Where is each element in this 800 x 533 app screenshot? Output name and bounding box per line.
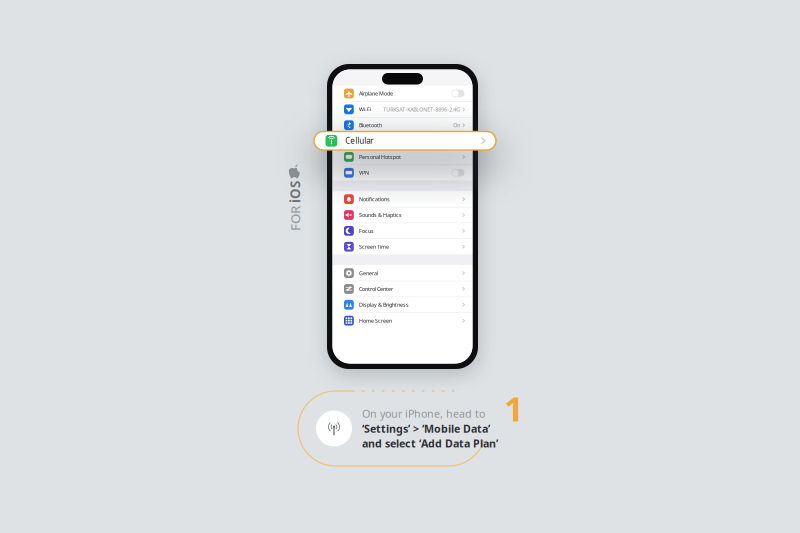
staticText: On — [453, 122, 460, 129]
button[interactable]: Cellular — [314, 131, 496, 150]
button[interactable]: Wi-Fi — [332, 102, 472, 117]
staticText: Home Screen — [359, 317, 392, 324]
staticText: Notifications — [359, 196, 390, 203]
staticText: General — [359, 270, 378, 277]
staticText: Bluetooth — [359, 122, 382, 129]
staticText: VPN — [359, 169, 369, 176]
button[interactable]: Notifications — [332, 191, 472, 207]
staticText: Screen Time — [359, 243, 389, 250]
button[interactable]: General — [332, 265, 472, 281]
button[interactable]: Sounds & Haptics — [332, 207, 472, 223]
button[interactable]: Personal Hotspot — [332, 149, 472, 165]
staticText: Sounds & Haptics — [359, 211, 402, 219]
staticText: Cellular — [345, 135, 373, 146]
button[interactable]: Bluetooth — [332, 117, 472, 133]
staticText: and select ‘Add Data Plan’ — [362, 436, 498, 451]
staticText: Airplane Mode — [359, 90, 393, 97]
staticText: FOR — [270, 197, 298, 215]
staticText: iOS — [298, 197, 320, 215]
staticText: Focus — [359, 227, 374, 234]
button[interactable]: Focus — [332, 223, 472, 239]
staticText: Wi-Fi — [359, 106, 371, 113]
button[interactable]: Airplane Mode — [332, 86, 472, 101]
button[interactable]: Display & Brightness — [332, 297, 472, 312]
staticText: Personal Hotspot — [359, 153, 401, 160]
staticText: TURKSAT-KABLONET-8896-2.4G — [383, 106, 460, 113]
button[interactable]: Control Center — [332, 281, 472, 297]
staticText: 1 — [504, 385, 524, 431]
staticText: On your iPhone, head to — [362, 406, 485, 421]
staticText: Control Center — [359, 285, 393, 292]
button[interactable]: Screen Time — [332, 239, 472, 254]
button[interactable]: VPN — [332, 165, 472, 180]
staticText: Display & Brightness — [359, 301, 409, 308]
staticText: ‘Settings’ > ‘Mobile Data’ — [362, 421, 490, 436]
button[interactable]: Home Screen — [332, 313, 472, 328]
